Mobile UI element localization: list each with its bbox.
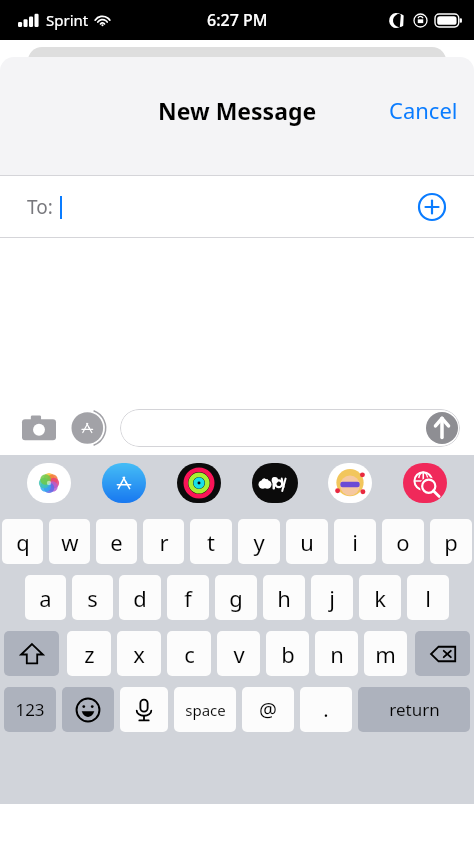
button[interactable]: Image search [399,462,451,504]
button[interactable]: g [215,575,257,620]
button[interactable]: h [263,575,305,620]
staticText: . [323,696,329,723]
button[interactable]: Camera [17,406,61,450]
staticText: x [133,639,145,669]
staticText: f [184,583,192,613]
staticText: j [329,583,335,613]
button[interactable]: k [359,575,401,620]
button[interactable]: c [167,631,211,676]
staticText: @ [259,696,277,723]
staticText: space [185,700,226,720]
button[interactable]: App Store [98,462,150,504]
button[interactable]: Photos [23,462,75,504]
staticText: w [61,527,79,557]
staticText: n [330,639,344,669]
button[interactable]: space [174,687,236,732]
staticText: d [133,583,147,613]
button[interactable]: Emoji [62,687,114,732]
staticText: 6:27 PM [207,9,268,31]
button[interactable]: e [96,519,137,564]
button[interactable]: a [25,575,66,620]
staticText: t [207,527,215,557]
staticText: y [253,527,265,557]
button[interactable]: m [364,631,407,676]
staticText: o [396,527,410,557]
staticText: q [16,527,30,557]
button[interactable]: b [266,631,309,676]
button[interactable]: 123 [4,687,56,732]
button[interactable]: j [311,575,353,620]
staticText: g [229,583,243,613]
button[interactable]: p [430,519,472,564]
button[interactable]: s [72,575,113,620]
staticText: a [39,583,52,613]
button[interactable]: return [358,687,470,732]
button[interactable]: Send [120,409,460,447]
button[interactable]: n [315,631,358,676]
button[interactable]: f [167,575,209,620]
staticText: i [352,527,358,557]
button[interactable]: Dictation [120,687,168,732]
button[interactable]: u [286,519,328,564]
staticText: c [184,639,195,669]
button[interactable]: z [67,631,111,676]
staticText: e [110,527,123,557]
button[interactable]: Shift [4,631,59,676]
button[interactable]: l [407,575,449,620]
staticText: Sprint [46,10,89,30]
button[interactable]: x [117,631,161,676]
staticText: 123 [15,698,45,721]
button[interactable]: y [238,519,280,564]
button[interactable]: Cancel [373,85,474,135]
button[interactable]: w [49,519,90,564]
button[interactable]: Memoji [324,462,376,504]
button[interactable]: App Store [67,406,111,450]
staticText: z [84,639,95,669]
button[interactable]: @ [242,687,294,732]
staticText: v [233,639,245,669]
staticText: u [300,527,314,557]
staticText: New Message [158,95,317,126]
staticText: To: [27,194,53,220]
staticText: p [444,527,458,557]
button[interactable]: Add contact [418,193,446,221]
staticText: m [375,639,396,669]
staticText: return [389,698,440,721]
button[interactable]: Backspace [415,631,470,676]
button[interactable]: v [217,631,260,676]
button[interactable]: i [334,519,376,564]
staticText: s [87,583,98,613]
button[interactable]: . [300,687,352,732]
button[interactable]: q [2,519,43,564]
staticText: k [374,583,386,613]
staticText: h [277,583,291,613]
staticText: b [281,639,295,669]
button[interactable]: To: [0,176,474,237]
button[interactable]: o [382,519,424,564]
button[interactable]: Activity [173,462,225,504]
button[interactable]: d [119,575,161,620]
button[interactable]: t [190,519,232,564]
staticText: Cancel [389,95,458,125]
button[interactable]: Send [426,412,458,444]
button[interactable]: Apple Pay [249,462,301,504]
staticText: r [159,527,169,557]
button[interactable]: r [143,519,184,564]
staticText: l [425,583,431,613]
